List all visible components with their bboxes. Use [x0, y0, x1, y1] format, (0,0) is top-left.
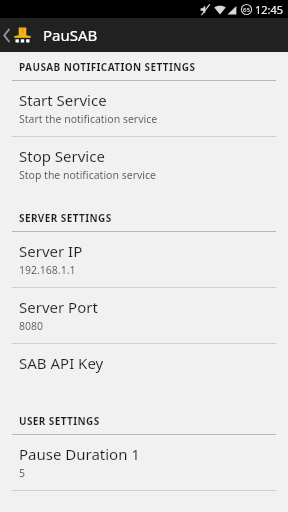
staticText: Pause Duration 1	[19, 444, 140, 464]
button[interactable]: Pause Duration 1	[0, 435, 288, 490]
staticText: 12:45	[255, 2, 284, 17]
staticText: Start the notification service	[19, 112, 158, 126]
staticText: 65	[243, 6, 250, 14]
staticText: 5	[19, 466, 26, 480]
staticText: SERVER SETTINGS	[19, 211, 112, 225]
staticText: 8080	[19, 319, 44, 333]
staticText: USER SETTINGS	[19, 414, 100, 428]
staticText: PauSAB	[43, 25, 98, 45]
staticText: 192.168.1.1	[19, 263, 76, 277]
button[interactable]: SAB API Key	[0, 344, 288, 395]
button[interactable]: Start Service	[0, 81, 288, 136]
staticText: Start Service	[19, 90, 107, 110]
staticText: SAB API Key	[19, 353, 104, 373]
staticText: Stop the notification service	[19, 168, 156, 182]
staticText: Server IP	[19, 241, 83, 261]
button[interactable]: Stop Service	[0, 137, 288, 192]
staticText: Server Port	[19, 297, 98, 317]
staticText: Stop Service	[19, 146, 105, 166]
button[interactable]: Navigate up	[0, 26, 34, 45]
button[interactable]: Server Port	[0, 288, 288, 343]
button[interactable]: Server IP	[0, 232, 288, 287]
staticText: PAUSAB NOTIFICATION SETTINGS	[19, 60, 196, 74]
